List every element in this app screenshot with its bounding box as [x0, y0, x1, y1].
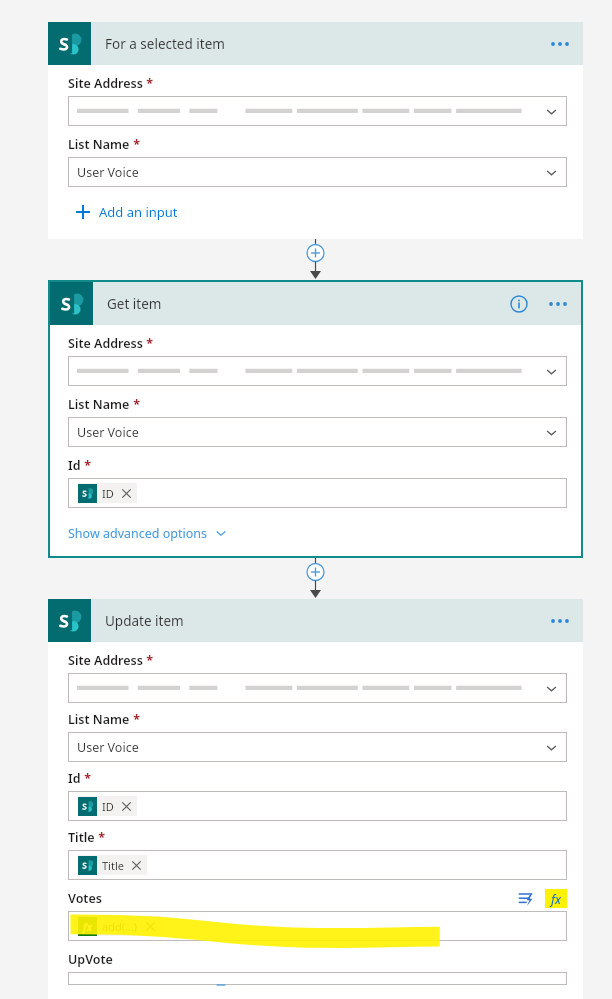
staticText: List Name	[68, 136, 130, 153]
staticText: add(...)	[102, 919, 138, 934]
staticText: Id	[68, 457, 81, 474]
staticText: Title	[102, 858, 124, 873]
button[interactable]: Remove Title	[128, 857, 144, 873]
button[interactable]	[68, 96, 567, 126]
staticText: *	[95, 829, 106, 846]
staticText: Title	[68, 829, 95, 846]
button[interactable]: Information	[505, 290, 533, 318]
staticText: Site Address	[68, 75, 143, 92]
staticText: Update item	[105, 612, 184, 630]
staticText: For a selected item	[105, 35, 225, 53]
staticText: Get item	[107, 295, 162, 313]
staticText: Show advanced options	[68, 525, 208, 542]
staticText: List Name	[68, 711, 130, 728]
button[interactable]: fx	[68, 911, 567, 941]
staticText: fx	[83, 920, 93, 934]
staticText: *	[130, 136, 141, 153]
button[interactable]: More options	[545, 29, 575, 59]
staticText: ID	[102, 799, 114, 814]
button[interactable]: More options	[545, 606, 575, 636]
staticText: *	[81, 770, 92, 787]
staticText: *	[130, 396, 141, 413]
staticText: *	[130, 711, 141, 728]
staticText: Site Address	[68, 652, 143, 669]
button[interactable]: User Voice	[68, 417, 567, 447]
staticText: User Voice	[77, 164, 545, 181]
staticText: List Name	[68, 396, 130, 413]
staticText: *	[143, 75, 154, 92]
staticText: Add an input	[99, 203, 178, 221]
button[interactable]: Add dynamic content	[515, 888, 535, 908]
staticText: *	[81, 457, 92, 474]
button[interactable]: ID	[68, 478, 567, 508]
button[interactable]	[68, 673, 567, 703]
staticText: *	[143, 652, 154, 669]
button[interactable]: Title	[68, 850, 567, 880]
button[interactable]: ID	[68, 791, 567, 821]
button[interactable]	[68, 356, 567, 386]
button[interactable]: Remove ID	[118, 485, 134, 501]
staticText: fx	[551, 891, 561, 907]
button[interactable]: Update item	[48, 599, 583, 642]
staticText: *	[143, 335, 154, 352]
staticText: User Voice	[77, 424, 545, 441]
button[interactable]: Remove ID	[118, 798, 134, 814]
staticText: UpVote	[68, 951, 113, 968]
button[interactable]: Expression editor	[545, 889, 567, 908]
button[interactable]: Get item	[50, 282, 581, 325]
button[interactable]: Add an input	[68, 199, 178, 225]
button[interactable]: User Voice	[68, 157, 567, 187]
staticText: Votes	[68, 890, 102, 907]
staticText: User Voice	[77, 739, 545, 756]
button[interactable]: Remove expression	[142, 918, 158, 934]
button[interactable]: User Voice	[68, 732, 567, 762]
staticText: Id	[68, 770, 81, 787]
button[interactable]: For a selected item	[48, 22, 583, 65]
staticText: Site Address	[68, 335, 143, 352]
button[interactable]: Show advanced options	[68, 522, 227, 544]
staticText: ID	[102, 486, 114, 501]
button[interactable]	[68, 972, 567, 985]
button[interactable]: More options	[543, 289, 573, 319]
